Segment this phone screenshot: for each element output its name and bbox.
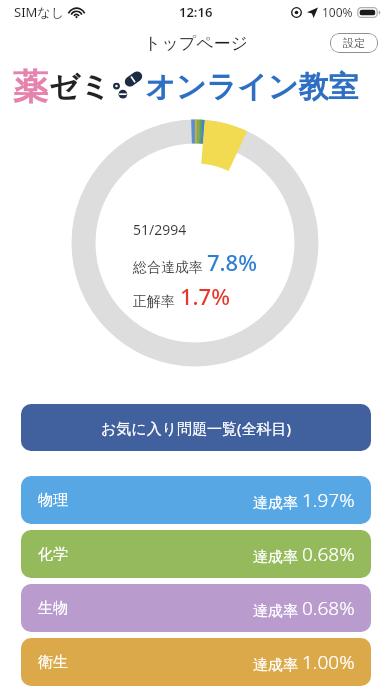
button[interactable]: 衛生 <box>21 638 371 686</box>
button[interactable]: お気に入り問題一覧(全科目) <box>21 404 371 451</box>
staticText: 7.8% <box>207 247 257 277</box>
staticText: 0.68% <box>302 595 355 621</box>
staticText: 正解率 <box>133 293 175 311</box>
staticText: お気に入り問題一覧(全科目) <box>101 418 292 438</box>
button[interactable]: 物理 <box>21 476 371 524</box>
staticText: 達成率 <box>253 656 298 675</box>
staticText: 衛生 <box>38 653 68 672</box>
staticText: 1.00% <box>302 649 355 675</box>
staticText: 1.97% <box>302 487 355 513</box>
staticText: 薬 <box>13 65 48 109</box>
staticText: 化学 <box>38 545 68 564</box>
staticText: ゼミ <box>49 68 111 106</box>
staticText: SIMなし <box>14 3 64 21</box>
staticText: 生物 <box>38 599 68 618</box>
staticText: オンライン教室 <box>145 68 359 106</box>
staticText: 物理 <box>38 491 68 510</box>
staticText: 総合達成率 <box>133 259 203 277</box>
staticText: 12:16 <box>179 3 213 21</box>
button[interactable]: 生物 <box>21 584 371 632</box>
staticText: 100% <box>322 4 353 20</box>
staticText: 51/2994 <box>133 220 187 239</box>
button[interactable]: 化学 <box>21 530 371 578</box>
staticText: 1.7% <box>180 281 230 311</box>
staticText: 達成率 <box>253 602 298 621</box>
staticText: 0.68% <box>302 541 355 567</box>
staticText: トップページ <box>144 33 248 54</box>
button[interactable]: 設定 <box>330 33 378 53</box>
staticText: 達成率 <box>253 548 298 567</box>
staticText: 設定 <box>343 36 365 50</box>
staticText: 達成率 <box>253 494 298 513</box>
